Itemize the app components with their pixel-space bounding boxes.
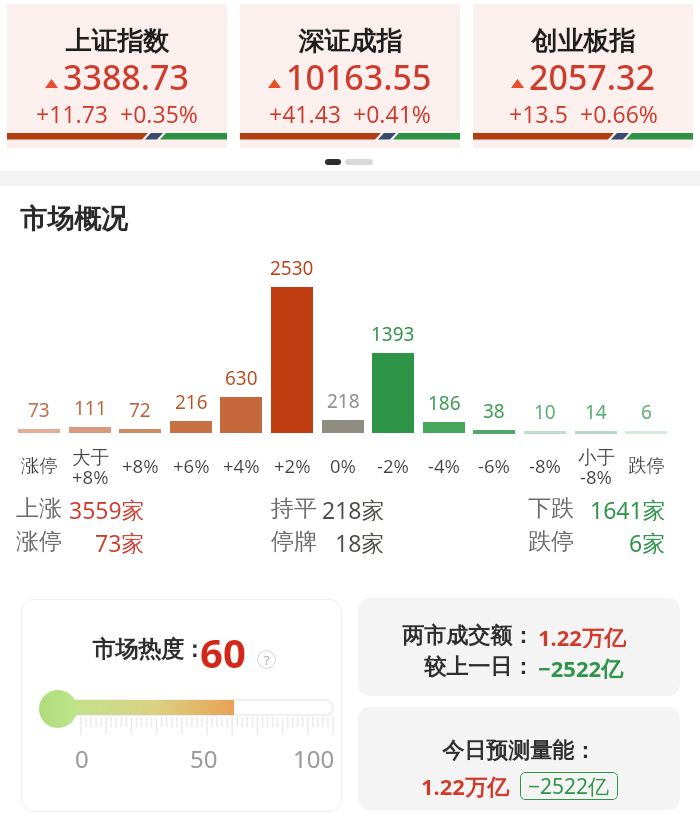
- staticText: 100: [293, 742, 335, 772]
- staticText: -6%: [478, 453, 510, 478]
- staticText: +2%: [274, 453, 311, 478]
- button[interactable]: 上涨: [16, 494, 145, 521]
- staticText: 3388.73: [63, 54, 189, 100]
- button[interactable]: 市场热度说明: [257, 650, 276, 669]
- staticText: 两市成交额：: [402, 622, 534, 648]
- staticText: 下跌: [528, 494, 574, 521]
- staticText: 3559家: [69, 494, 145, 521]
- staticText: +8%: [122, 453, 159, 478]
- staticText: 持平: [271, 494, 317, 521]
- staticText: 6家: [629, 527, 666, 554]
- staticText: 10: [534, 399, 556, 423]
- staticText: 1.22万亿: [421, 771, 509, 801]
- staticText: 38: [483, 398, 505, 422]
- button[interactable]: 停牌: [271, 527, 385, 554]
- staticText: 73家: [95, 527, 145, 554]
- button[interactable]: 持平: [271, 494, 385, 521]
- staticText: 18家: [335, 527, 385, 554]
- staticText: +13.5: [509, 98, 568, 129]
- staticText: 50: [190, 742, 218, 772]
- staticText: 1393: [371, 321, 415, 345]
- staticText: +0.66%: [580, 98, 658, 129]
- staticText: 630: [225, 365, 258, 389]
- staticText: 市场热度: [92, 635, 184, 664]
- staticText: 大于: [72, 446, 109, 468]
- staticText: 10163.55: [286, 54, 432, 100]
- staticText: −2522亿: [538, 653, 624, 679]
- button[interactable]: 今日预测量能：: [358, 707, 680, 810]
- button[interactable]: 跌停: [528, 527, 666, 554]
- staticText: 111: [74, 395, 107, 419]
- staticText: 上证指数: [65, 25, 169, 58]
- staticText: 186: [428, 390, 461, 414]
- staticText: 1.22万亿: [538, 622, 626, 648]
- staticText: 今日预测量能：: [442, 737, 596, 764]
- button[interactable]: 上证指数: [7, 4, 227, 148]
- button[interactable]: 创业板指: [473, 4, 693, 148]
- staticText: 创业板指: [531, 25, 635, 58]
- staticText: +4%: [223, 453, 260, 478]
- button[interactable]: 下跌: [528, 494, 666, 521]
- staticText: 较上一日：: [424, 653, 534, 679]
- staticText: +11.73: [36, 98, 108, 129]
- button[interactable]: 深证成指: [240, 4, 460, 148]
- staticText: 6: [641, 399, 652, 423]
- staticText: −2522亿: [528, 772, 610, 800]
- staticText: 73: [28, 397, 50, 421]
- staticText: +8%: [72, 464, 109, 486]
- staticText: 小于: [578, 446, 615, 468]
- staticText: 0: [75, 742, 89, 772]
- staticText: +0.41%: [353, 98, 431, 129]
- staticText: ?: [264, 651, 270, 669]
- staticText: -8%: [529, 453, 561, 478]
- staticText: 216: [175, 389, 208, 413]
- staticText: -2%: [377, 453, 409, 478]
- staticText: 跌停: [528, 527, 574, 554]
- staticText: +41.43: [269, 98, 341, 129]
- staticText: 2530: [270, 255, 314, 279]
- staticText: 60: [200, 625, 246, 673]
- staticText: 上涨: [16, 494, 62, 521]
- staticText: 涨停: [16, 527, 62, 554]
- staticText: 0%: [330, 453, 356, 478]
- staticText: 218家: [322, 494, 385, 521]
- staticText: 218: [327, 388, 360, 412]
- staticText: 跌停: [628, 454, 665, 477]
- button[interactable]: 涨停: [16, 527, 145, 554]
- button[interactable]: 两市成交额：: [358, 598, 680, 696]
- staticText: 72: [129, 397, 151, 421]
- staticText: 涨停: [21, 454, 58, 477]
- staticText: 市场概况: [20, 202, 128, 236]
- button[interactable]: 市场热度: [21, 599, 342, 812]
- staticText: -4%: [428, 453, 460, 478]
- staticText: 1641家: [590, 494, 666, 521]
- staticText: 14: [585, 399, 607, 423]
- staticText: 2057.32: [529, 54, 655, 100]
- staticText: +6%: [173, 453, 210, 478]
- staticText: -8%: [580, 464, 612, 486]
- staticText: 深证成指: [298, 25, 402, 58]
- staticText: 停牌: [271, 527, 317, 554]
- staticText: ：: [183, 635, 206, 664]
- staticText: +0.35%: [120, 98, 198, 129]
